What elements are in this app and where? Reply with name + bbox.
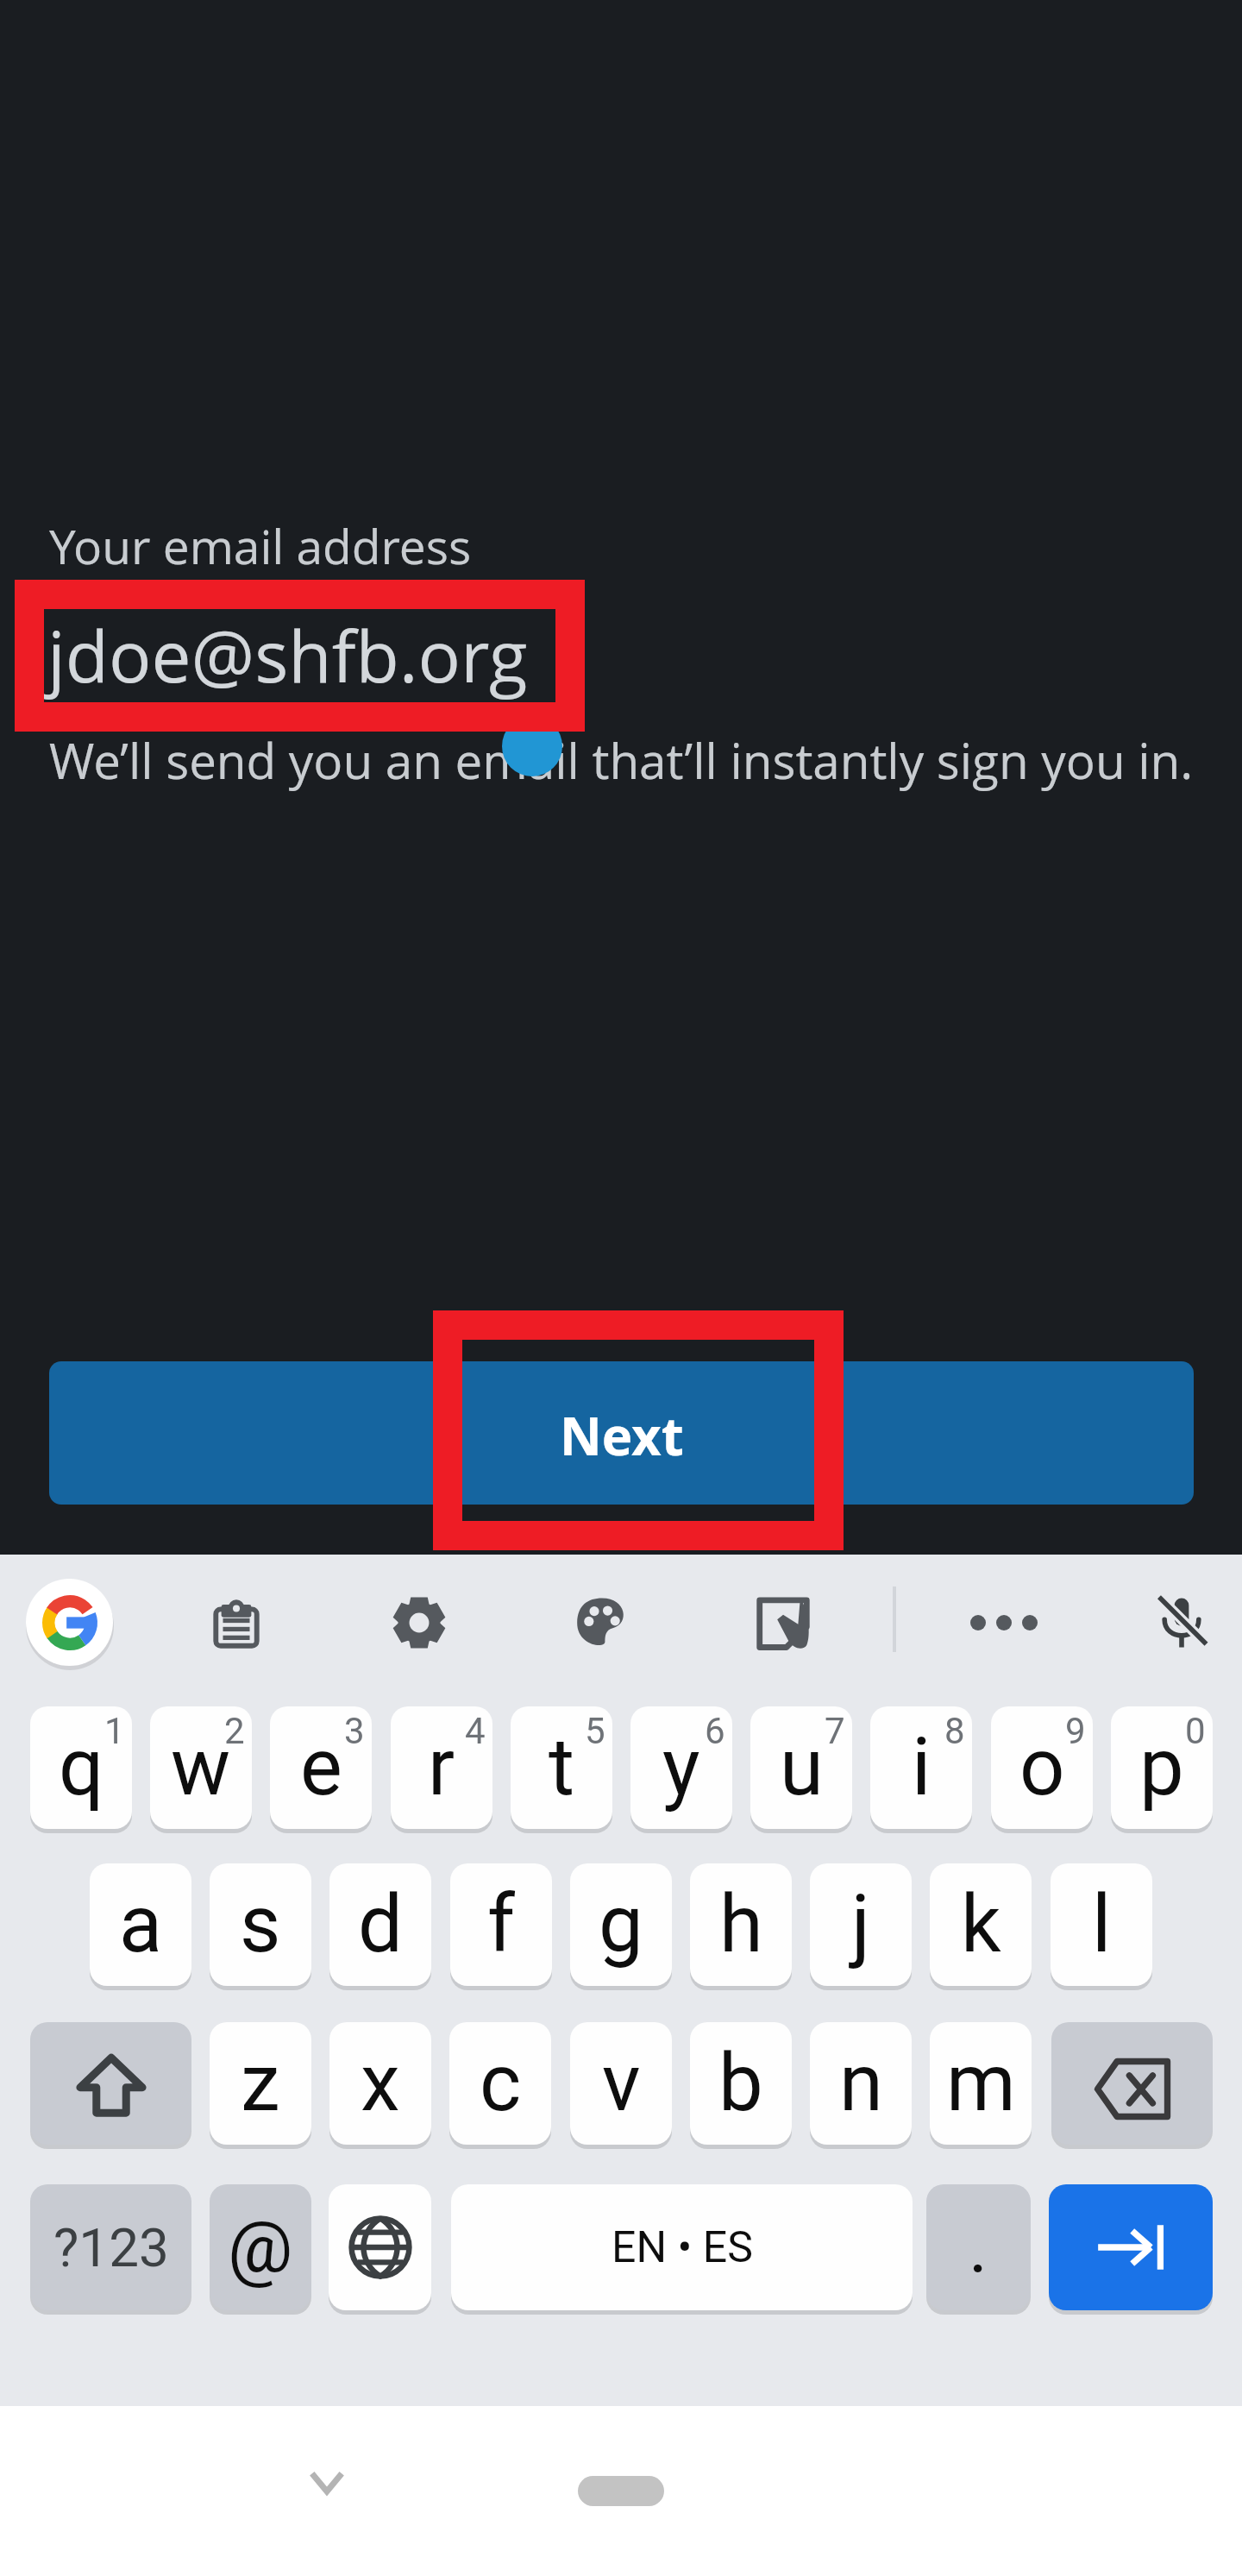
staticText: l	[1092, 1878, 1112, 1971]
button[interactable]: Settings	[373, 1577, 465, 1668]
staticText: s	[240, 1878, 281, 1971]
staticText: b	[718, 2037, 763, 2130]
staticText: 4	[465, 1710, 486, 1752]
staticText: k	[961, 1878, 1001, 1971]
button[interactable]: EN • ES	[451, 2184, 913, 2310]
staticText: h	[719, 1878, 763, 1971]
button[interactable]: Enter	[1049, 2184, 1213, 2310]
button[interactable]: h	[690, 1863, 792, 1986]
staticText: EN • ES	[612, 2222, 753, 2273]
staticText: f	[487, 1878, 515, 1971]
staticText: 8	[944, 1710, 965, 1752]
button[interactable]: .	[926, 2184, 1031, 2310]
button[interactable]: w	[150, 1706, 252, 1829]
button[interactable]: Backspace	[1051, 2022, 1213, 2145]
staticText: t	[549, 1721, 575, 1814]
button[interactable]: n	[810, 2022, 912, 2145]
staticText: z	[241, 2037, 280, 2130]
staticText: 7	[825, 1710, 845, 1752]
button[interactable]: l	[1051, 1863, 1152, 1986]
staticText: w	[171, 1721, 231, 1814]
button[interactable]: f	[450, 1863, 552, 1986]
staticText: y	[662, 1721, 700, 1814]
staticText: ?123	[53, 2216, 169, 2279]
button[interactable]: More options	[958, 1577, 1050, 1668]
button[interactable]: o	[991, 1706, 1093, 1829]
staticText: 3	[344, 1710, 365, 1752]
button[interactable]: c	[449, 2022, 551, 2145]
button[interactable]: k	[930, 1863, 1032, 1986]
button[interactable]: Home	[578, 2476, 664, 2506]
button[interactable]: z	[210, 2022, 311, 2145]
button[interactable]: y	[630, 1706, 732, 1829]
button[interactable]: r	[391, 1706, 492, 1829]
staticText: 0	[1185, 1710, 1206, 1752]
staticText: p	[1139, 1721, 1184, 1814]
button[interactable]: q	[30, 1706, 132, 1829]
staticText: .	[969, 2205, 988, 2290]
button[interactable]: g	[570, 1863, 672, 1986]
button[interactable]: Change language	[329, 2184, 431, 2310]
button[interactable]: b	[690, 2022, 792, 2145]
button[interactable]: Voice input off	[1136, 1577, 1227, 1668]
staticText: jdoe@shfb.org	[47, 606, 528, 703]
button[interactable]: ?123	[30, 2184, 191, 2310]
button[interactable]: d	[329, 1863, 431, 1986]
staticText: @	[228, 2205, 293, 2290]
staticText: m	[946, 2037, 1016, 2130]
staticText: 2	[224, 1710, 245, 1752]
staticText: o	[1019, 1721, 1065, 1814]
staticText: Next	[560, 1400, 684, 1471]
staticText: r	[428, 1721, 455, 1814]
staticText: We’ll send you an email that’ll instantl…	[49, 727, 1194, 794]
button[interactable]: @	[210, 2184, 311, 2310]
staticText: e	[300, 1721, 342, 1814]
button[interactable]: Next	[49, 1361, 1194, 1505]
button[interactable]: j	[810, 1863, 912, 1986]
staticText: 9	[1065, 1710, 1086, 1752]
button[interactable]: jdoe@shfb.org	[44, 595, 1194, 702]
button[interactable]: Shift	[30, 2022, 191, 2145]
button[interactable]: a	[90, 1863, 191, 1986]
button[interactable]: v	[570, 2022, 672, 2145]
staticText: x	[361, 2037, 400, 2130]
button[interactable]: u	[750, 1706, 852, 1829]
button[interactable]: Stickers	[737, 1577, 829, 1668]
button[interactable]: p	[1111, 1706, 1213, 1829]
staticText: a	[119, 1878, 163, 1971]
staticText: q	[59, 1721, 104, 1814]
staticText: 6	[705, 1710, 725, 1752]
button[interactable]: Google	[26, 1579, 113, 1666]
button[interactable]: t	[511, 1706, 612, 1829]
staticText: Your email address	[49, 513, 472, 578]
button[interactable]: m	[930, 2022, 1032, 2145]
button[interactable]: e	[270, 1706, 372, 1829]
button[interactable]: Hide keyboard	[279, 2435, 375, 2531]
staticText: 5	[585, 1710, 605, 1752]
staticText: j	[851, 1878, 871, 1971]
staticText: v	[602, 2037, 641, 2130]
staticText: u	[780, 1721, 824, 1814]
staticText: n	[839, 2037, 883, 2130]
staticText: d	[358, 1878, 403, 1971]
button[interactable]: s	[210, 1863, 311, 1986]
button[interactable]: Themes	[556, 1577, 648, 1668]
staticText: g	[599, 1878, 643, 1971]
button[interactable]: i	[870, 1706, 972, 1829]
button[interactable]: Clipboard	[191, 1577, 282, 1668]
button[interactable]: x	[329, 2022, 431, 2145]
staticText: 1	[104, 1710, 125, 1752]
staticText: c	[480, 2037, 522, 2130]
staticText: i	[912, 1721, 931, 1814]
